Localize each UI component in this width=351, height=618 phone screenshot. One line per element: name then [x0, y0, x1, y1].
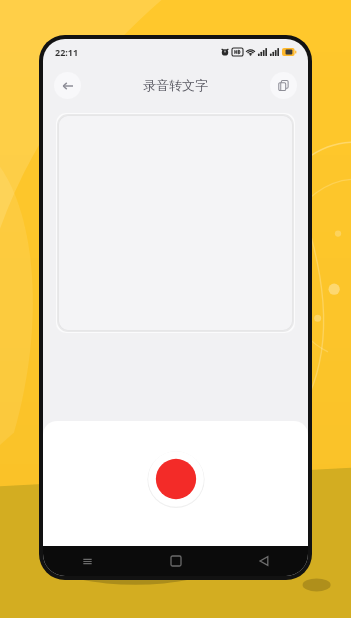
- button[interactable]: Back: [220, 546, 308, 576]
- button[interactable]: Back: [54, 72, 81, 99]
- button[interactable]: Recents: [43, 546, 132, 576]
- staticText: 22:11: [55, 46, 79, 58]
- button[interactable]: My records: [270, 72, 297, 99]
- button[interactable]: Start recording: [147, 450, 205, 508]
- staticText: 录音转文字: [143, 77, 208, 93]
- button[interactable]: Home: [132, 546, 220, 576]
